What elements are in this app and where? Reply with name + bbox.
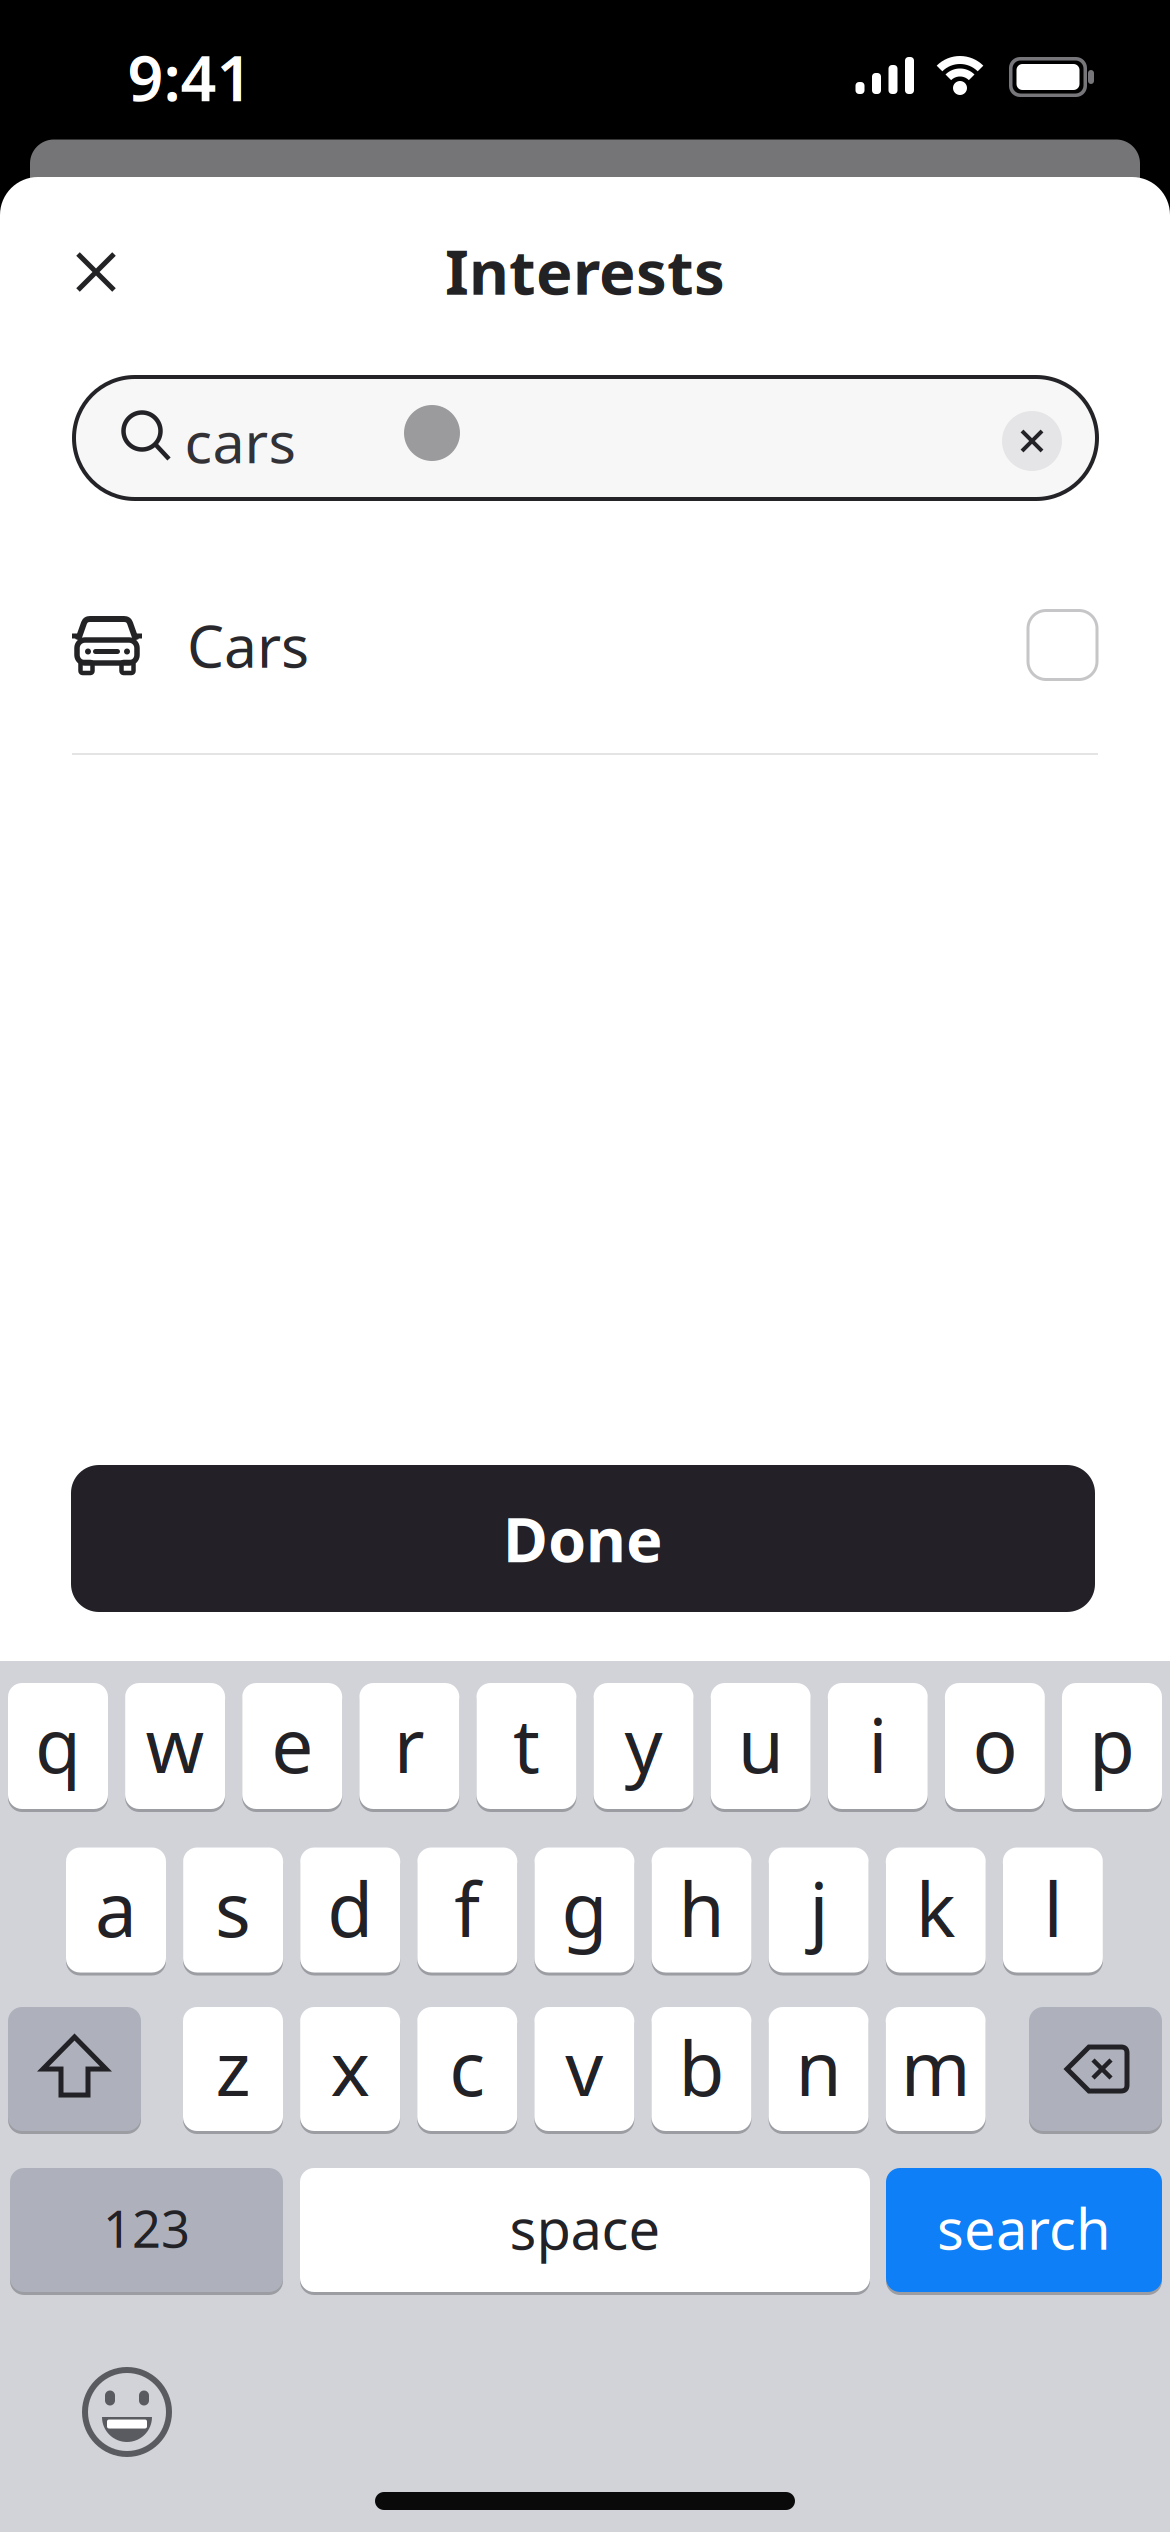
staticText: Cars: [187, 606, 309, 684]
button[interactable]: space: [300, 2168, 870, 2292]
button[interactable]: v: [534, 2007, 634, 2131]
button[interactable]: t: [476, 1683, 576, 1809]
staticText: o: [972, 1694, 1017, 1794]
staticText: b: [678, 2017, 724, 2117]
button[interactable]: o: [945, 1683, 1045, 1809]
staticText: u: [738, 1694, 784, 1794]
button[interactable]: d: [300, 1847, 400, 1972]
staticText: e: [271, 1694, 313, 1794]
button[interactable]: z: [183, 2007, 283, 2131]
staticText: l: [1043, 1858, 1062, 1958]
staticText: x: [331, 2017, 370, 2117]
button[interactable]: h: [651, 1847, 751, 1972]
button[interactable]: f: [417, 1847, 517, 1972]
staticText: t: [513, 1694, 540, 1794]
button[interactable]: i: [828, 1683, 928, 1809]
staticText: y: [624, 1694, 662, 1794]
staticText: m: [901, 2017, 971, 2117]
staticText: Interests: [445, 230, 725, 312]
button[interactable]: p: [1062, 1683, 1162, 1809]
button[interactable]: l: [1003, 1847, 1103, 1972]
button[interactable]: y: [593, 1683, 693, 1809]
staticText: w: [146, 1694, 205, 1794]
staticText: h: [678, 1858, 724, 1958]
button[interactable]: j: [769, 1847, 869, 1972]
button[interactable]: Close: [52, 228, 140, 316]
button[interactable]: g: [534, 1847, 634, 1972]
staticText: k: [916, 1858, 956, 1958]
staticText: d: [327, 1858, 373, 1958]
staticText: p: [1089, 1694, 1135, 1794]
staticText: z: [215, 2017, 250, 2117]
button[interactable]: s: [183, 1847, 283, 1972]
button[interactable]: r: [359, 1683, 459, 1809]
staticText: r: [394, 1694, 425, 1794]
button[interactable]: Shift: [8, 2007, 141, 2131]
staticText: q: [35, 1694, 81, 1794]
staticText: f: [454, 1858, 480, 1958]
staticText: cars: [184, 403, 295, 479]
staticText: c: [449, 2017, 485, 2117]
button[interactable]: u: [711, 1683, 811, 1809]
button[interactable]: q: [8, 1683, 108, 1809]
button[interactable]: b: [651, 2007, 751, 2131]
button[interactable]: search: [886, 2168, 1162, 2292]
staticText: j: [809, 1858, 828, 1958]
button[interactable]: Cars: [72, 575, 1098, 715]
button[interactable]: Clear search: [1002, 411, 1062, 471]
button[interactable]: c: [417, 2007, 517, 2131]
button[interactable]: x: [300, 2007, 400, 2131]
button[interactable]: 123: [10, 2168, 283, 2292]
staticText: space: [509, 2191, 660, 2265]
button[interactable]: k: [886, 1847, 986, 1972]
button[interactable]: Emoji: [83, 2368, 171, 2456]
staticText: search: [937, 2191, 1111, 2265]
staticText: v: [565, 2017, 603, 2117]
staticText: Done: [503, 1498, 663, 1579]
button[interactable]: w: [125, 1683, 225, 1809]
staticText: 9:41: [127, 35, 252, 119]
staticText: g: [561, 1858, 607, 1958]
button[interactable]: e: [242, 1683, 342, 1809]
button[interactable]: n: [768, 2007, 868, 2131]
button[interactable]: a: [66, 1847, 166, 1972]
staticText: a: [95, 1858, 137, 1958]
staticText: s: [215, 1858, 251, 1958]
button[interactable]: Done: [71, 1465, 1095, 1612]
staticText: i: [868, 1694, 887, 1794]
staticText: 123: [103, 2194, 190, 2262]
staticText: n: [795, 2017, 841, 2117]
button[interactable]: Delete: [1029, 2007, 1162, 2131]
button[interactable]: m: [886, 2007, 986, 2131]
